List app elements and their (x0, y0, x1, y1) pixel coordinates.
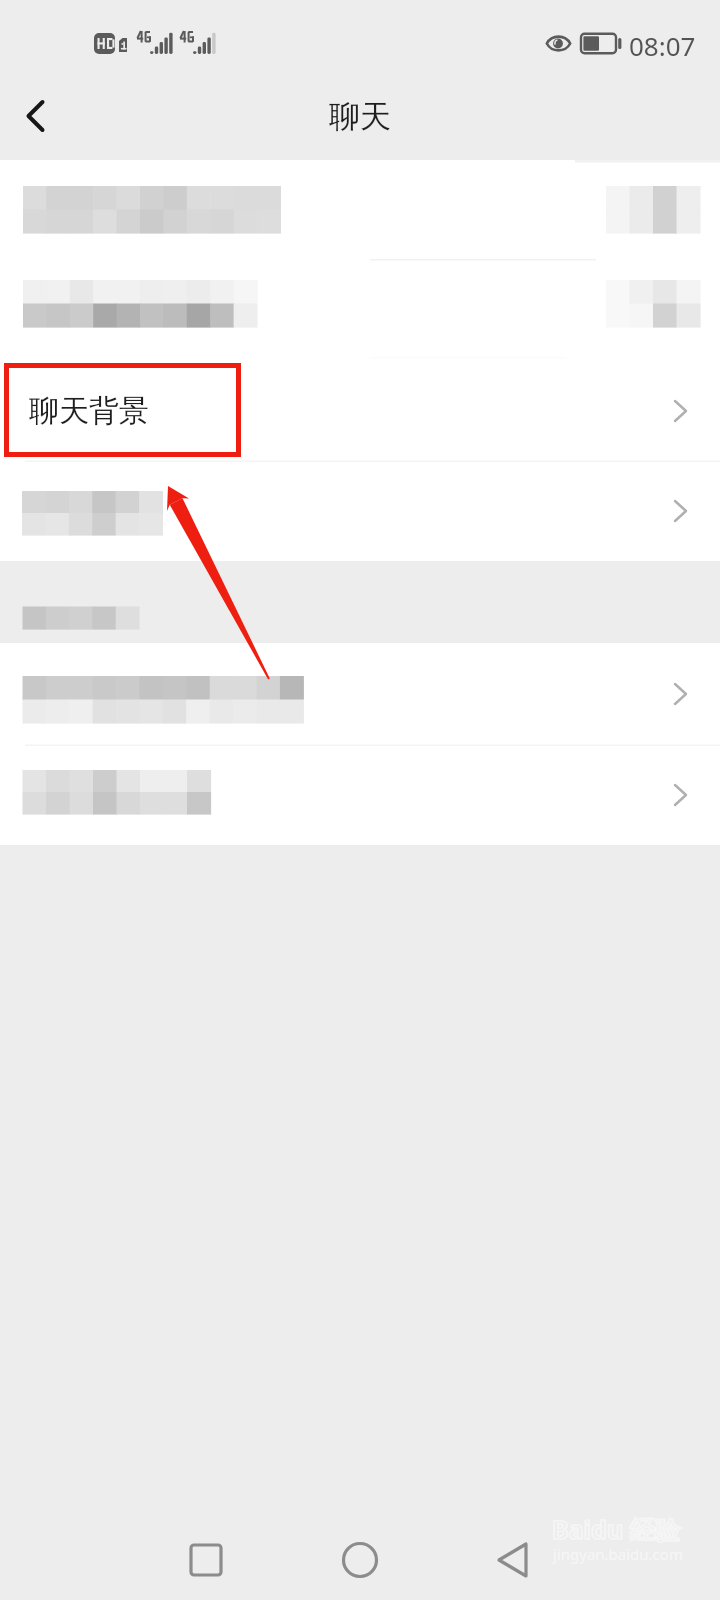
button[interactable]: Back (473, 1520, 553, 1600)
button[interactable] (0, 643, 720, 745)
staticText: Baidu 经验 (552, 1512, 680, 1546)
button[interactable] (0, 745, 720, 845)
button[interactable]: Back (0, 77, 76, 153)
staticText: 08:07 (629, 28, 696, 63)
staticText: 聊天 (329, 97, 391, 136)
button[interactable]: Home (320, 1520, 400, 1600)
button[interactable] (0, 461, 720, 561)
staticText: 聊天背景 (29, 392, 149, 430)
button[interactable]: Recent apps (166, 1520, 246, 1600)
button[interactable]: 聊天背景 (0, 360, 720, 461)
